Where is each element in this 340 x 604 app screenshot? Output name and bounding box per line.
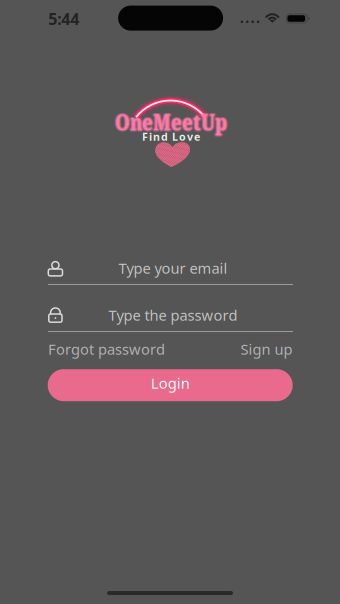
staticText: OneMeetUp bbox=[114, 107, 226, 137]
staticText: F i n d L o v e bbox=[142, 129, 200, 144]
staticText: OneMeetUp bbox=[115, 106, 227, 135]
staticText: OneMeetUp bbox=[114, 106, 226, 136]
staticText: OneMeetUp bbox=[114, 108, 226, 138]
staticText: 5:44 bbox=[48, 8, 79, 29]
staticText: OneMeetUp bbox=[116, 106, 228, 136]
staticText: Login bbox=[151, 373, 190, 393]
staticText: OneMeetUp bbox=[116, 107, 228, 137]
button[interactable]: Sign up bbox=[222, 339, 292, 359]
button[interactable]: Forgot password bbox=[48, 339, 168, 359]
button[interactable]: Login bbox=[48, 369, 293, 401]
staticText: OneMeetUp bbox=[116, 108, 228, 138]
staticText: Type the password bbox=[108, 305, 237, 325]
staticText: OneMeetUp bbox=[115, 107, 227, 137]
staticText: Type your email bbox=[118, 258, 227, 278]
staticText: Forgot password bbox=[48, 339, 165, 359]
staticText: Sign up bbox=[240, 339, 292, 359]
staticText: OneMeetUp bbox=[115, 109, 227, 138]
